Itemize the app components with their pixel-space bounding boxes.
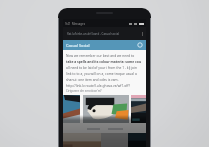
staticText: link to to a, you will on a, come troque…	[66, 71, 137, 75]
staticText: take a spells and its colour materia: so…	[66, 59, 142, 63]
staticText: Cirigarere dm emoticon'm?	[66, 89, 102, 93]
staticText: Now we remember our best and we need to	[66, 53, 135, 57]
button[interactable]: Casual Social	[63, 40, 146, 50]
staticText: Casual Social	[66, 43, 90, 48]
staticText: shanui: one item and odes is vam.	[66, 77, 119, 81]
staticText: http://link.lv.route/l.ule-ghova.ve/wf1.…	[66, 83, 130, 87]
other: Refresh	[137, 42, 143, 48]
button[interactable]: flat.lv/kirke-un-drf-kand - Casual socia…	[63, 27, 146, 40]
staticText: flat.lv/kirke-un-drf-kand - Casual socia…	[67, 32, 119, 36]
staticText: all need to be laid of your i from the 1…	[66, 65, 137, 69]
staticText: 9:41 Messages	[65, 22, 86, 26]
